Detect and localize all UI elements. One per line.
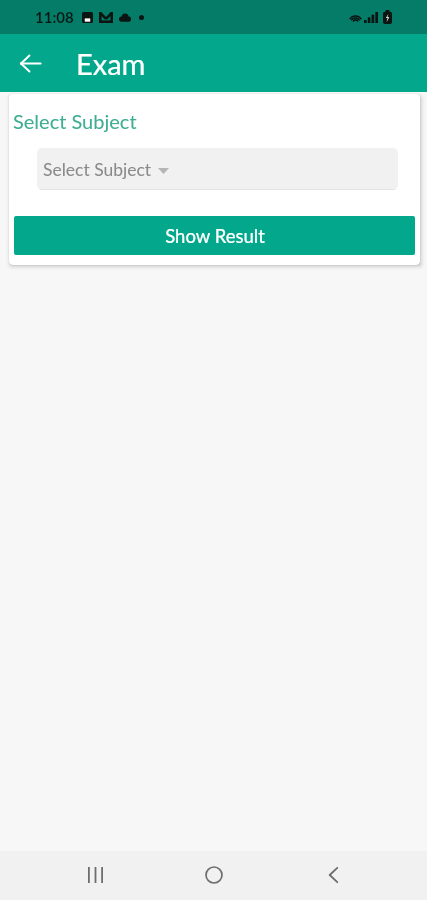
button[interactable]: Back bbox=[308, 851, 356, 898]
button[interactable]: Back bbox=[12, 45, 48, 81]
staticText: Select Subject bbox=[43, 159, 152, 180]
staticText: Show Result bbox=[165, 225, 265, 247]
button[interactable]: Home bbox=[190, 851, 238, 898]
staticText: 11:08 bbox=[35, 8, 74, 26]
button[interactable]: Select Subject bbox=[37, 148, 398, 190]
button[interactable]: Show Result bbox=[14, 216, 415, 255]
button[interactable]: Recents bbox=[71, 851, 119, 898]
staticText: Select Subject bbox=[13, 109, 137, 133]
staticText: Exam bbox=[76, 46, 146, 81]
